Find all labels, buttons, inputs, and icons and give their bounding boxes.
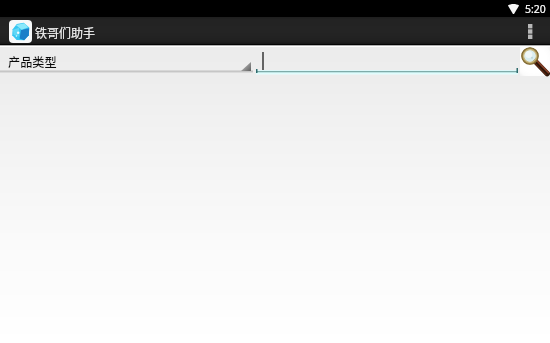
button[interactable]: Search <box>520 46 550 76</box>
button[interactable]: More options <box>520 17 544 44</box>
staticText: 铁哥们助手 <box>35 24 96 41</box>
button[interactable] <box>256 47 518 77</box>
staticText: 产品类型 <box>8 53 57 71</box>
staticText: 5:20 <box>525 2 546 16</box>
button[interactable]: 产品类型 <box>0 47 253 74</box>
